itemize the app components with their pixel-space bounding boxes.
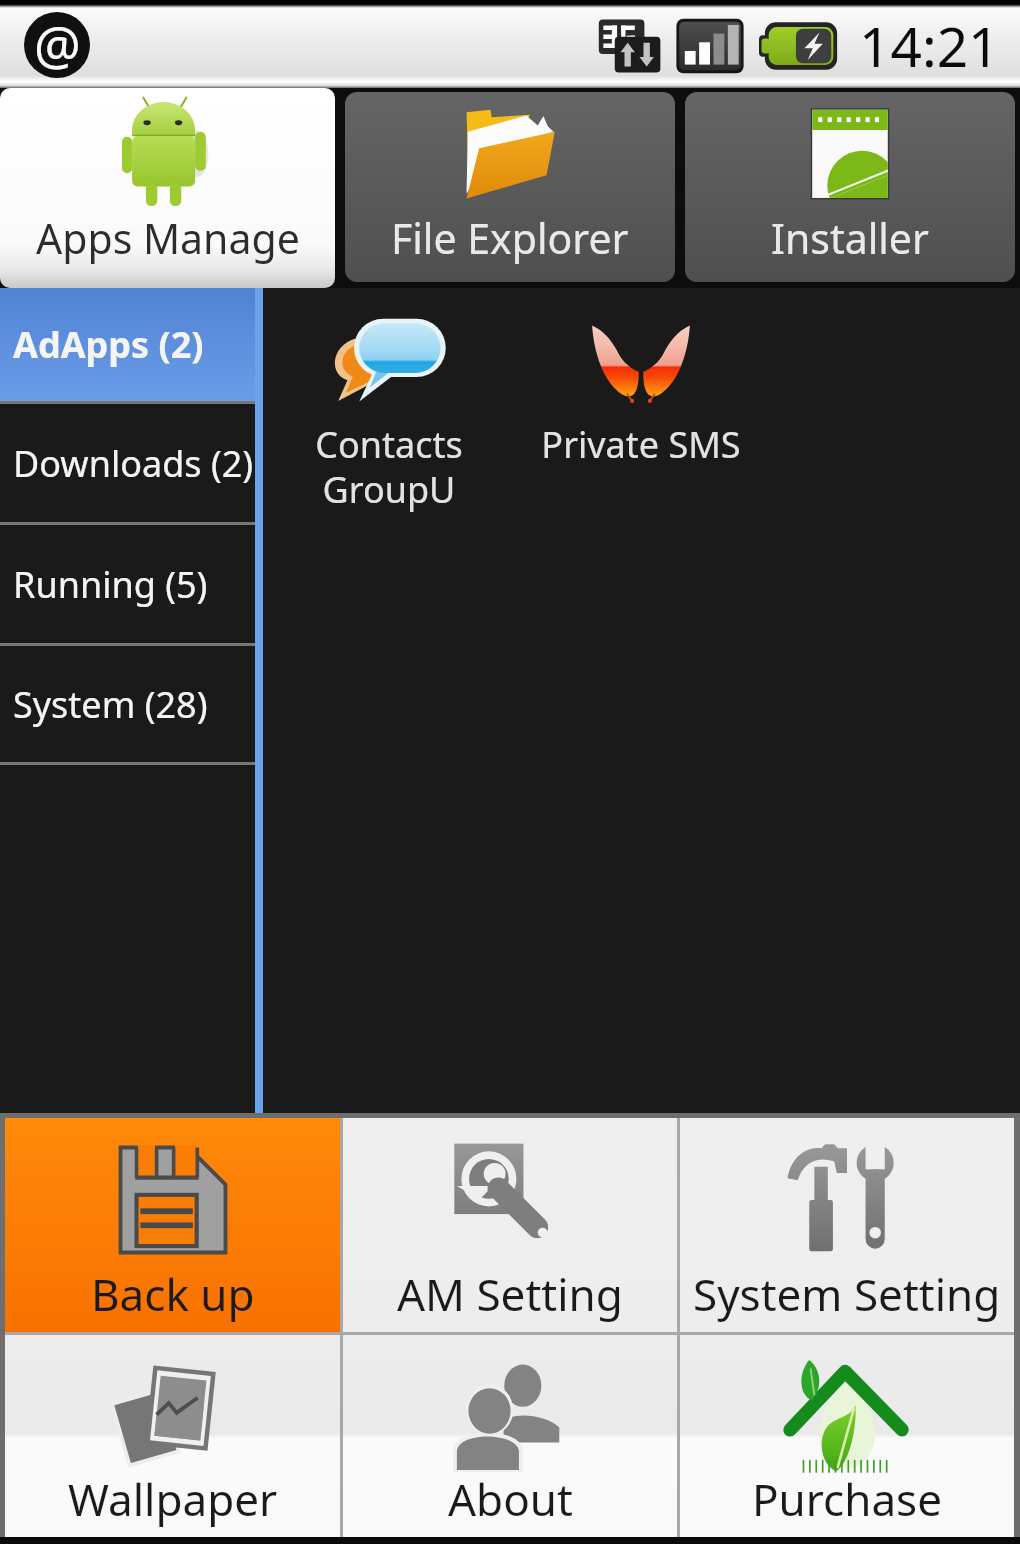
- staticText: Back up: [91, 1264, 255, 1324]
- staticText: System (28): [13, 680, 255, 729]
- button[interactable]: Downloads (2): [0, 404, 255, 522]
- button[interactable]: AdApps (2): [0, 288, 255, 401]
- staticText: Wallpaper: [68, 1469, 278, 1529]
- staticText: @: [34, 12, 81, 75]
- staticText: Purchase: [752, 1469, 942, 1529]
- staticText: Installer: [771, 210, 929, 266]
- button[interactable]: System Setting: [680, 1118, 1014, 1332]
- button[interactable]: System (28): [0, 646, 255, 762]
- staticText: 14:21: [859, 8, 1000, 83]
- staticText: File Explorer: [391, 210, 629, 266]
- staticText: AM Setting: [397, 1264, 623, 1324]
- button[interactable]: Contacts GroupU: [263, 310, 515, 513]
- button[interactable]: Private SMS: [515, 310, 767, 469]
- staticText: Private SMS: [541, 420, 741, 469]
- staticText: Contacts GroupU: [315, 420, 463, 513]
- staticText: About: [448, 1469, 573, 1529]
- staticText: Downloads (2): [13, 439, 255, 488]
- button[interactable]: Running (5): [0, 525, 255, 643]
- staticText: Apps Manage: [36, 210, 300, 266]
- staticText: System Setting: [693, 1264, 1001, 1324]
- button[interactable]: Wallpaper: [5, 1335, 340, 1537]
- staticText: AdApps (2): [13, 320, 255, 369]
- staticText: Running (5): [13, 560, 255, 609]
- button[interactable]: Installer: [685, 92, 1015, 282]
- button[interactable]: Purchase: [680, 1335, 1014, 1537]
- button[interactable]: AM Setting: [343, 1118, 677, 1332]
- button[interactable]: File Explorer: [345, 92, 675, 282]
- button[interactable]: Back up: [5, 1118, 340, 1332]
- button[interactable]: About: [343, 1335, 677, 1537]
- button[interactable]: Apps Manage: [0, 88, 335, 288]
